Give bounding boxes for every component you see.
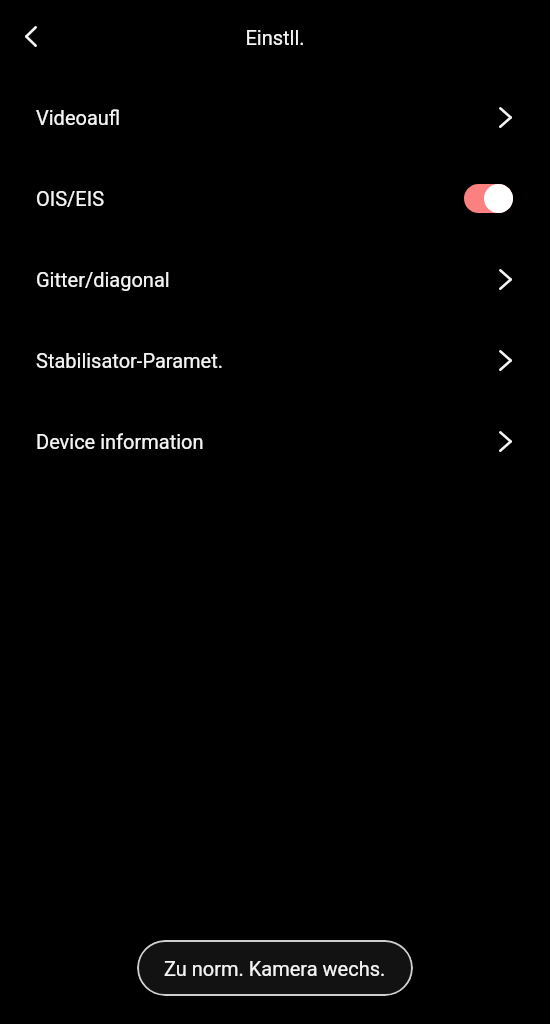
staticText: Zu norm. Kamera wechs. bbox=[164, 957, 386, 980]
staticText: OIS/EIS bbox=[36, 187, 105, 210]
button[interactable]: Zu norm. Kamera wechs. bbox=[137, 940, 413, 996]
other: Open Videoaufl bbox=[499, 107, 512, 128]
button[interactable]: Toggle OIS/EIS bbox=[464, 183, 513, 213]
staticText: Einstll. bbox=[245, 26, 305, 49]
button[interactable]: Stabilisator-Paramet. bbox=[0, 320, 550, 401]
other: Open Gitter/diagonal bbox=[499, 269, 512, 290]
button[interactable]: Device information bbox=[0, 401, 550, 482]
staticText: Gitter/diagonal bbox=[36, 268, 170, 291]
staticText: Stabilisator-Paramet. bbox=[36, 349, 223, 372]
button[interactable]: OIS/EIS bbox=[0, 158, 550, 239]
button[interactable]: Back bbox=[12, 14, 50, 58]
staticText: Videoaufl bbox=[36, 106, 121, 129]
staticText: Device information bbox=[36, 430, 204, 453]
other: Open Stabilisator-Paramet. bbox=[499, 350, 512, 371]
button[interactable]: Gitter/diagonal bbox=[0, 239, 550, 320]
other: Open Device information bbox=[499, 431, 512, 452]
button[interactable]: Videoaufl bbox=[0, 77, 550, 158]
